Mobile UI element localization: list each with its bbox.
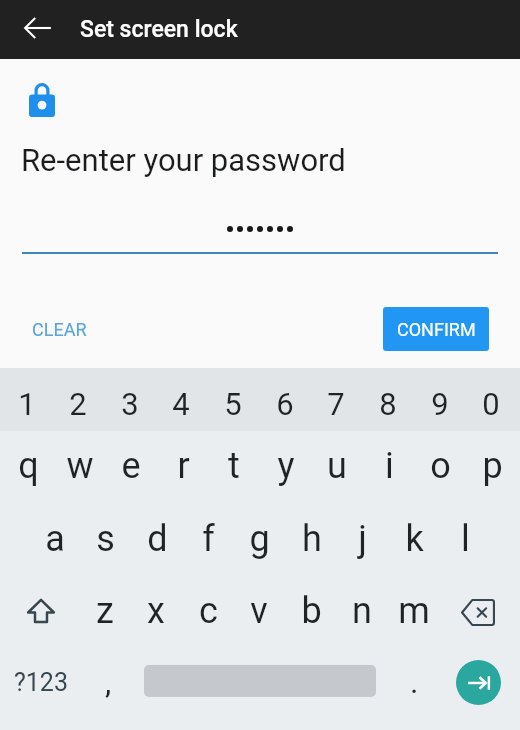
button[interactable]: x	[130, 573, 182, 648]
button[interactable]: CONFIRM	[383, 307, 489, 351]
button[interactable]: m	[388, 573, 440, 648]
staticText: z	[96, 590, 114, 632]
button[interactable]: l	[440, 501, 491, 576]
staticText: v	[250, 590, 268, 632]
staticText: 0	[482, 386, 500, 422]
button[interactable]: h	[286, 501, 337, 576]
staticText: 5	[224, 386, 242, 422]
button[interactable]: 0	[465, 372, 517, 435]
button[interactable]: v	[233, 573, 285, 648]
button[interactable]: e	[105, 428, 157, 503]
staticText: CONFIRM	[397, 319, 476, 340]
button[interactable]: a	[29, 501, 80, 576]
staticText: t	[228, 445, 240, 487]
staticText: Re-enter your password	[21, 142, 346, 178]
button[interactable]: Backspace	[440, 575, 516, 650]
staticText: e	[121, 445, 141, 487]
staticText: p	[482, 445, 503, 487]
staticText: b	[301, 590, 322, 632]
staticText: c	[199, 590, 218, 632]
staticText: q	[18, 445, 39, 487]
button[interactable]: w	[54, 428, 106, 503]
button[interactable]: k	[389, 501, 440, 576]
staticText: 4	[172, 386, 190, 422]
staticText: d	[147, 518, 168, 560]
staticText: o	[430, 445, 451, 487]
staticText: Set screen lock	[80, 16, 238, 43]
button[interactable]: 6	[259, 372, 311, 435]
staticText: l	[461, 518, 470, 560]
button[interactable]: p	[466, 428, 518, 503]
button[interactable]: CLEAR	[20, 307, 99, 352]
staticText: 2	[69, 386, 87, 422]
staticText: .	[410, 663, 419, 701]
button[interactable]: u	[311, 428, 363, 503]
staticText: i	[385, 445, 394, 487]
button[interactable]: Enter	[440, 645, 516, 719]
button[interactable]: Back	[10, 0, 66, 56]
staticText: u	[327, 445, 347, 487]
button[interactable]: z	[79, 573, 131, 648]
button[interactable]: c	[182, 573, 234, 648]
button[interactable]: t	[208, 428, 260, 503]
staticText: a	[45, 518, 65, 560]
button[interactable]: y	[260, 428, 312, 503]
button[interactable]: 3	[104, 372, 156, 435]
staticText: ?123	[14, 668, 68, 697]
staticText: w	[66, 445, 94, 487]
button[interactable]: j	[337, 501, 388, 576]
button[interactable]: 7	[310, 372, 362, 435]
staticText: h	[302, 518, 322, 560]
button[interactable]: n	[336, 573, 388, 648]
staticText: 3	[121, 386, 139, 422]
staticText: n	[352, 590, 372, 632]
button[interactable]: g	[234, 501, 285, 576]
button[interactable]: s	[80, 501, 131, 576]
button[interactable]: Space	[136, 645, 384, 719]
button[interactable]: i	[363, 428, 415, 503]
button[interactable]: q	[2, 428, 54, 503]
button[interactable]: 5	[207, 372, 259, 435]
button[interactable]: o	[414, 428, 466, 503]
staticText: ,	[105, 663, 112, 701]
staticText: f	[202, 518, 215, 560]
staticText: CLEAR	[32, 319, 87, 340]
staticText: 9	[431, 386, 449, 422]
button[interactable]: 9	[414, 372, 466, 435]
staticText: r	[177, 445, 190, 487]
button[interactable]: Shift	[2, 573, 80, 648]
button[interactable]: ,	[80, 645, 136, 719]
button[interactable]: 4	[155, 372, 207, 435]
button[interactable]: 8	[362, 372, 414, 435]
button[interactable]: .	[386, 645, 442, 719]
staticText: m	[398, 590, 430, 632]
staticText: k	[405, 518, 424, 560]
button[interactable]: 2	[52, 372, 104, 435]
staticText: s	[96, 518, 115, 560]
staticText: x	[147, 590, 165, 632]
staticText: 6	[276, 386, 294, 422]
staticText: 8	[379, 386, 397, 422]
staticText: 7	[327, 386, 345, 422]
button[interactable]: r	[157, 428, 209, 503]
button[interactable]: 1	[1, 372, 53, 435]
staticText: 1	[18, 386, 36, 422]
staticText: g	[249, 518, 270, 560]
staticText: y	[277, 445, 295, 487]
button[interactable]: d	[132, 501, 183, 576]
staticText: j	[358, 518, 367, 560]
button[interactable]: f	[183, 501, 234, 576]
button[interactable]: b	[285, 573, 337, 648]
button[interactable]: ?123	[2, 645, 80, 719]
